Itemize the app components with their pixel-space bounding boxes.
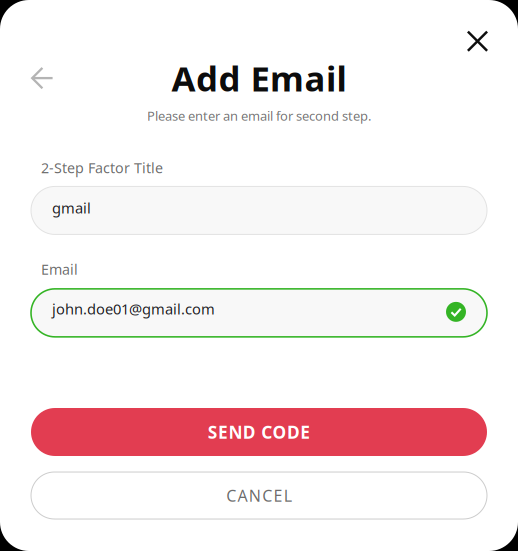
staticText: 2-Step Factor Title <box>41 158 163 177</box>
staticText: Add Email <box>171 55 346 101</box>
staticText: gmail <box>52 198 91 218</box>
button[interactable]: CANCEL <box>31 472 487 519</box>
staticText: CANCEL <box>226 485 292 506</box>
staticText: SEND CODE <box>208 420 310 443</box>
staticText: Email <box>41 259 78 279</box>
button[interactable]: SEND CODE <box>31 408 487 456</box>
button[interactable]: Close <box>467 31 488 52</box>
staticText: Please enter an email for second step. <box>147 107 371 125</box>
button[interactable]: Back <box>31 67 54 90</box>
staticText: john.doe01@gmail.com <box>52 299 215 319</box>
